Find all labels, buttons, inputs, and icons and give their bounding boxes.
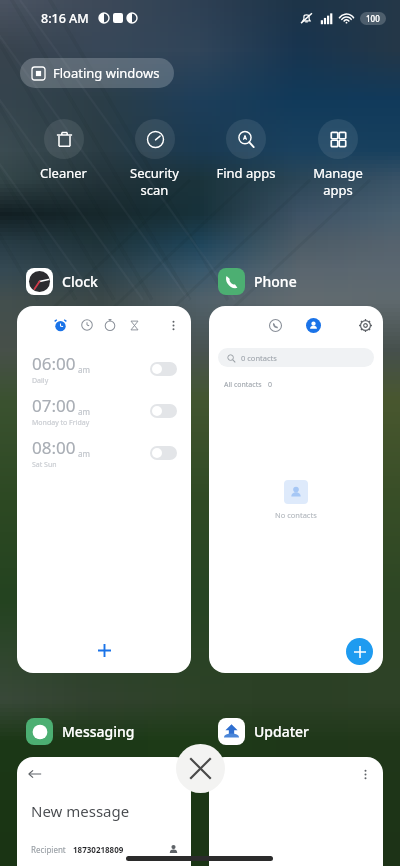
- staticText: Cleaner: [40, 164, 87, 182]
- button[interactable]: Cleaner: [18, 119, 109, 182]
- staticText: Clock: [62, 272, 98, 291]
- staticText: Sat Sun: [32, 460, 57, 470]
- button[interactable]: Add contact: [346, 638, 373, 665]
- button[interactable]: Back: [17, 757, 191, 866]
- button[interactable]: Clock tab: [73, 311, 101, 339]
- button[interactable]: Clock: [26, 268, 98, 295]
- staticText: All contacts: [224, 380, 262, 390]
- staticText: Monday to Friday: [32, 418, 90, 428]
- staticText: Recipient: [31, 844, 66, 855]
- button[interactable]: Timer tab: [120, 311, 148, 339]
- staticText: Updater: [254, 722, 310, 741]
- button[interactable]: Alarm tab: [46, 311, 74, 339]
- staticText: 0 contacts: [241, 353, 277, 363]
- staticText: Find apps: [216, 164, 276, 182]
- staticText: am: [78, 364, 90, 375]
- button[interactable]: More options: [160, 312, 186, 338]
- staticText: No contacts: [275, 510, 317, 520]
- button[interactable]: Updater: [218, 718, 310, 745]
- button[interactable]: Find apps: [200, 119, 291, 182]
- button[interactable]: Add alarm: [86, 632, 122, 668]
- staticText: am: [78, 448, 90, 459]
- button[interactable]: Messaging: [26, 718, 135, 745]
- staticText: Manage apps: [313, 164, 363, 199]
- staticText: am: [78, 406, 90, 417]
- button[interactable]: Manage apps: [292, 119, 383, 199]
- button[interactable]: Clear all: [176, 744, 225, 793]
- staticText: New message: [31, 801, 130, 821]
- button[interactable]: More options: [353, 762, 377, 786]
- staticText: Phone: [254, 272, 297, 291]
- button[interactable]: 07:00: [32, 390, 177, 432]
- button[interactable]: Recent calls: [261, 311, 289, 339]
- button[interactable]: Phone: [218, 268, 297, 295]
- staticText: Security scan: [130, 164, 179, 199]
- staticText: 07:00: [32, 394, 76, 417]
- button[interactable]: 0 contacts: [218, 348, 374, 367]
- staticText: Messaging: [62, 722, 135, 741]
- staticText: 8:16 AM: [41, 10, 89, 27]
- button[interactable]: Settings: [352, 312, 378, 338]
- button[interactable]: Floating windows: [20, 58, 174, 88]
- button[interactable]: More options: [209, 757, 383, 866]
- staticText: 100: [366, 13, 380, 24]
- staticText: 08:00: [32, 436, 76, 459]
- button[interactable]: Back: [23, 762, 47, 786]
- staticText: 06:00: [32, 352, 76, 375]
- staticText: Daily: [32, 376, 49, 386]
- button[interactable]: Contacts: [299, 311, 327, 339]
- button[interactable]: Recent calls: [209, 306, 383, 673]
- button[interactable]: 08:00: [32, 432, 177, 474]
- button[interactable]: Security scan: [109, 119, 200, 199]
- button[interactable]: Stopwatch tab: [96, 311, 124, 339]
- staticText: 0: [268, 380, 273, 390]
- button[interactable]: 06:00: [32, 348, 177, 390]
- button[interactable]: Alarm tab: [17, 306, 191, 673]
- staticText: 18730218809: [73, 844, 124, 855]
- staticText: Floating windows: [53, 64, 160, 82]
